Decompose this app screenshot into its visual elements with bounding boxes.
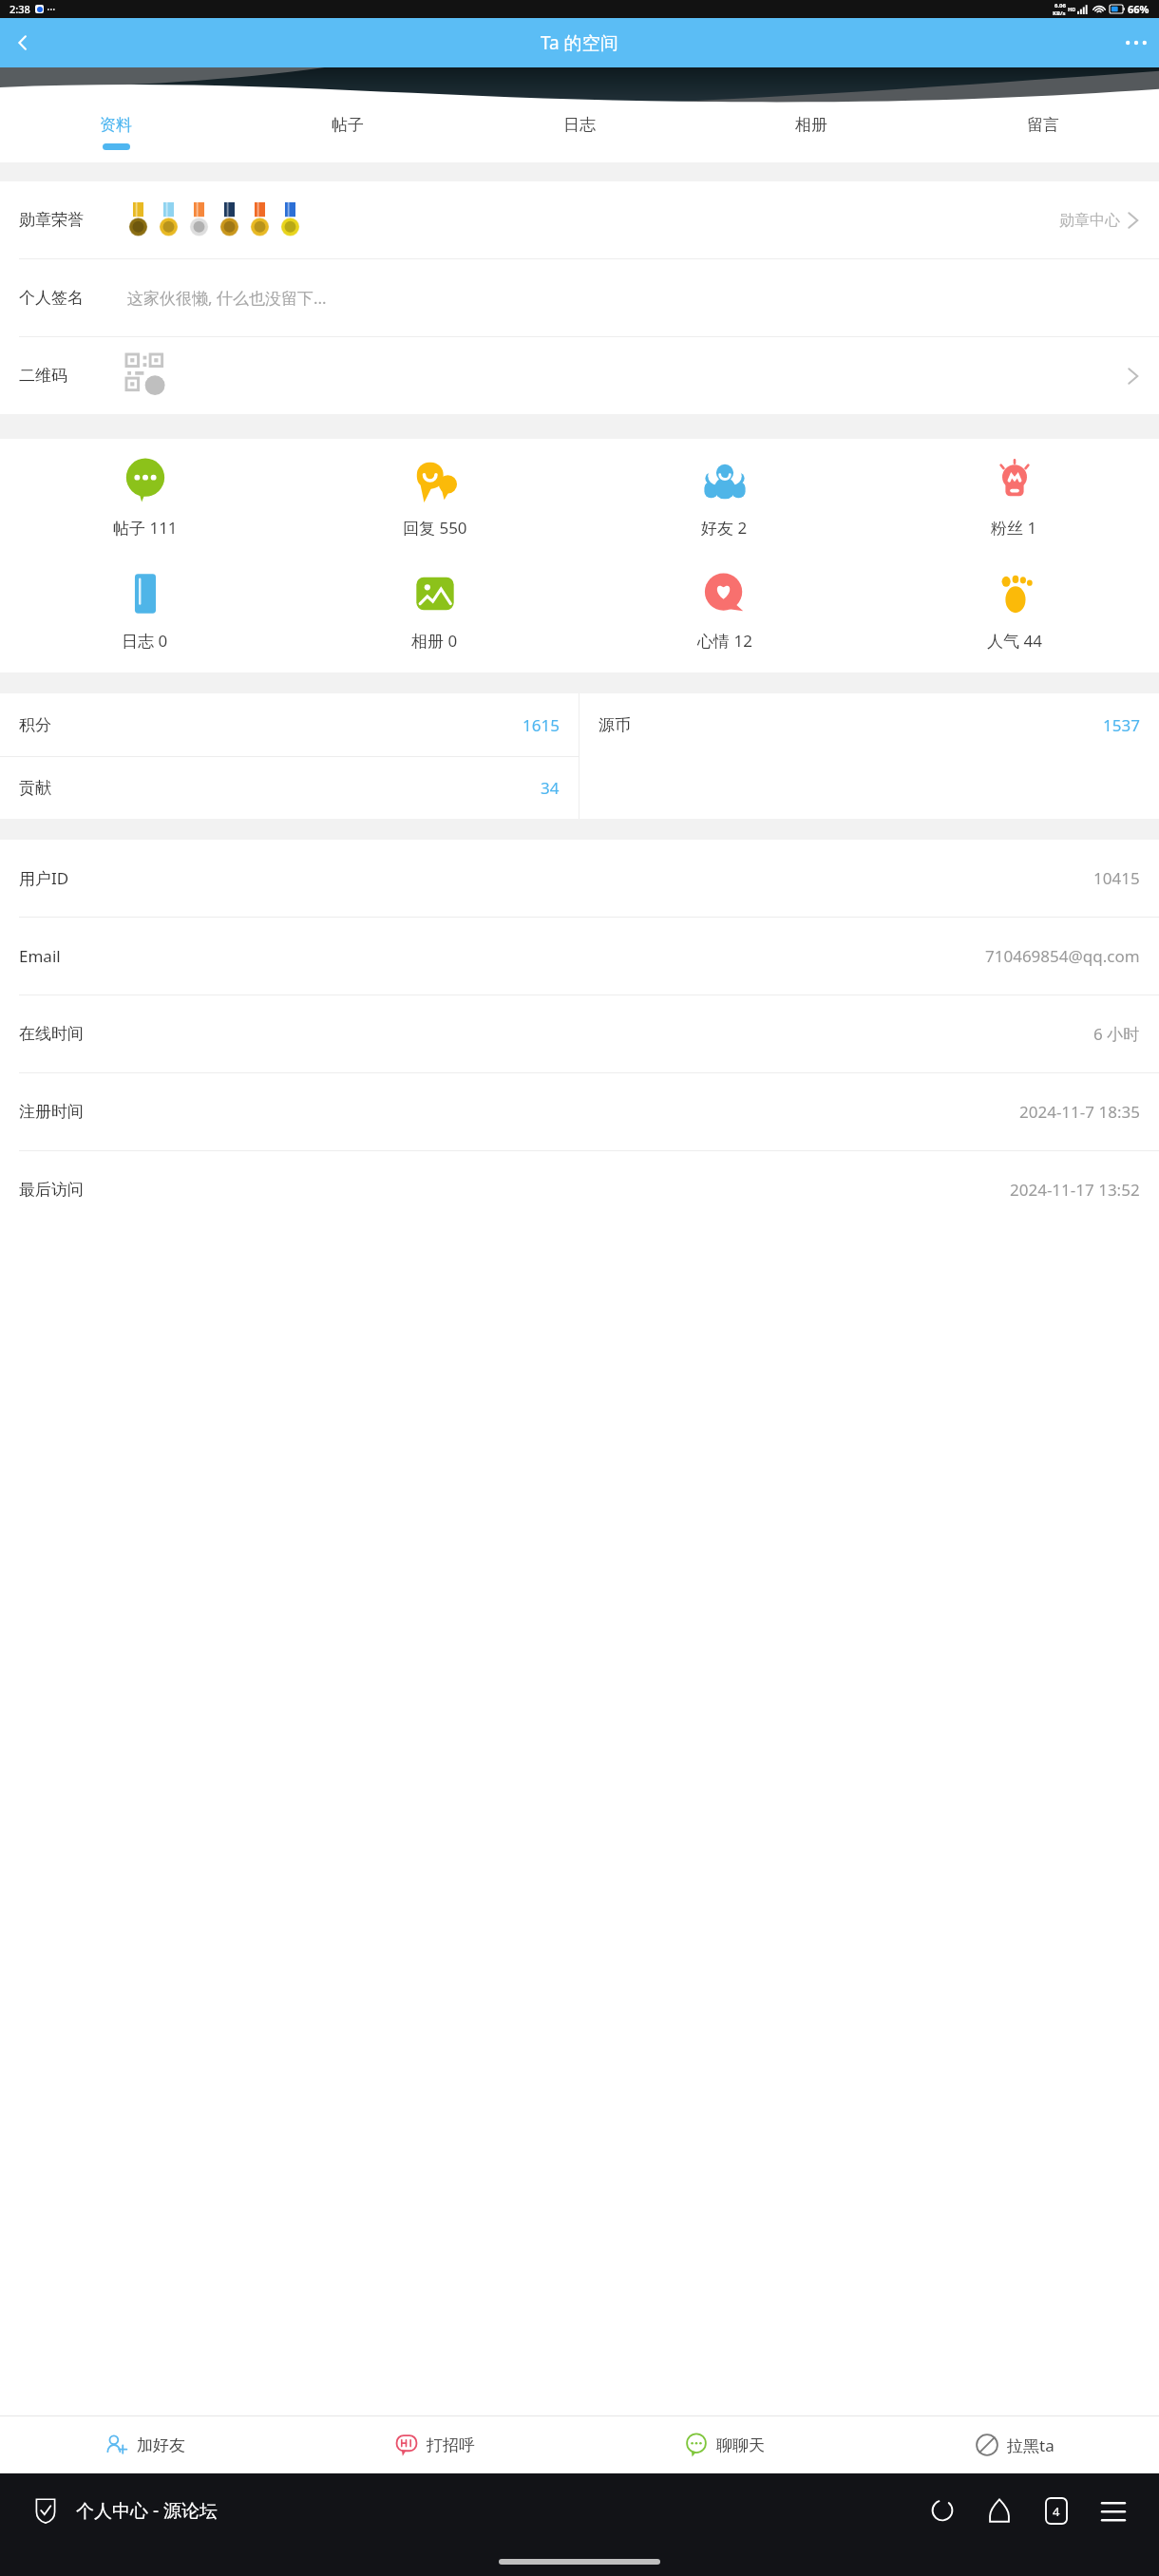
staticText: 66% <box>1128 2 1149 16</box>
staticText: 1615 <box>522 714 560 736</box>
staticText: 最后访问 <box>19 1180 84 1200</box>
button[interactable]: 日志 <box>464 104 695 162</box>
button[interactable]: Menu <box>1092 2490 1134 2531</box>
button[interactable]: Email <box>0 918 1159 994</box>
button[interactable]: 粉丝 1 <box>869 452 1159 544</box>
button[interactable]: 积分 <box>0 693 579 756</box>
staticText: 心情 12 <box>697 630 752 652</box>
button[interactable]: 源币 <box>579 693 1159 756</box>
button[interactable]: Secure <box>25 2490 66 2531</box>
button[interactable]: 打招呼 <box>290 2416 579 2473</box>
button[interactable]: 最后访问 <box>0 1151 1159 1228</box>
button[interactable]: 帖子 <box>232 104 464 162</box>
staticText: 粉丝 1 <box>991 517 1037 539</box>
staticText: Ta 的空间 <box>541 30 618 55</box>
button[interactable]: 聊聊天 <box>579 2416 869 2473</box>
button[interactable]: Reload <box>921 2490 963 2531</box>
staticText: 6 小时 <box>1093 1023 1140 1045</box>
staticText: 勋章中心 <box>1059 211 1120 230</box>
staticText: 10415 <box>1093 867 1140 889</box>
button[interactable]: 个人签名 <box>0 259 1159 336</box>
staticText: 2024-11-7 18:35 <box>1019 1101 1140 1123</box>
staticText: 710469854@qq.com <box>985 945 1140 967</box>
staticText: 人气 44 <box>987 630 1042 652</box>
staticText: 用户ID <box>19 867 69 889</box>
staticText: 回复 550 <box>403 517 467 539</box>
button[interactable]: 好友 2 <box>579 452 869 544</box>
button[interactable]: 拉黑ta <box>869 2416 1159 2473</box>
button[interactable]: Tabs: 4 <box>1035 2490 1077 2531</box>
button[interactable]: 注册时间 <box>0 1073 1159 1150</box>
button[interactable]: Home <box>978 2490 1020 2531</box>
button[interactable]: 帖子 111 <box>0 452 290 544</box>
staticText: 4 <box>1053 2503 1060 2520</box>
button[interactable]: 回复 550 <box>290 452 579 544</box>
staticText: 贡献 <box>19 778 51 798</box>
button[interactable]: 相册 0 <box>290 565 579 657</box>
staticText: 2024-11-17 13:52 <box>1010 1179 1140 1201</box>
staticText: 好友 2 <box>701 517 748 539</box>
staticText: 聊聊天 <box>716 2435 765 2455</box>
button[interactable]: 日志 0 <box>0 565 290 657</box>
button[interactable]: 相册 <box>695 104 927 162</box>
button[interactable]: 贡献 <box>0 757 579 819</box>
staticText: 在线时间 <box>19 1024 84 1044</box>
staticText: 源币 <box>598 715 631 735</box>
staticText: 个人中心 - 源论坛 <box>76 2498 218 2523</box>
staticText: 打招呼 <box>427 2435 475 2455</box>
button[interactable]: 勋章荣誉 <box>0 181 1159 258</box>
button[interactable]: More options <box>1113 20 1159 66</box>
button[interactable]: 加好友 <box>0 2416 290 2473</box>
staticText: KB/s <box>1053 9 1066 17</box>
staticText: 留言 <box>1027 115 1059 135</box>
staticText: 34 <box>541 777 560 799</box>
staticText: 个人签名 <box>19 288 84 308</box>
button[interactable]: 心情 12 <box>579 565 869 657</box>
button[interactable]: 资料 <box>0 104 232 162</box>
button[interactable]: 用户ID <box>0 840 1159 917</box>
staticText: 资料 <box>100 115 132 135</box>
staticText: 积分 <box>19 715 51 735</box>
staticText: 拉黑ta <box>1007 2434 1054 2456</box>
staticText: 1537 <box>1103 714 1140 736</box>
staticText: 2:38 <box>9 2 30 16</box>
button[interactable]: 人气 44 <box>869 565 1159 657</box>
staticText: 日志 0 <box>122 630 168 652</box>
staticText: 6.06 <box>1054 2 1066 9</box>
staticText: 帖子 <box>332 115 364 135</box>
button[interactable]: 留言 <box>927 104 1159 162</box>
button[interactable]: 在线时间 <box>0 995 1159 1072</box>
staticText: 相册 0 <box>411 630 458 652</box>
staticText: 注册时间 <box>19 1102 84 1122</box>
staticText: 加好友 <box>137 2435 185 2455</box>
staticText: 相册 <box>795 115 827 135</box>
staticText: Email <box>19 945 61 967</box>
staticText: 二维码 <box>19 366 67 386</box>
staticText: 这家伙很懒, 什么也没留下... <box>127 287 327 309</box>
button[interactable]: Back <box>0 20 46 66</box>
staticText: HD <box>1068 6 1076 12</box>
staticText: 勋章荣誉 <box>19 210 84 230</box>
staticText: 日志 <box>563 115 596 135</box>
button[interactable]: 二维码 <box>0 337 1159 414</box>
staticText: 帖子 111 <box>113 517 178 539</box>
